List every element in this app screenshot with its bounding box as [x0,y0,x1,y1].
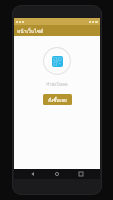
button[interactable]: Back [28,169,38,179]
staticText: หน้าเว็บไซต์ [17,27,44,35]
button[interactable]: Recent apps [76,169,86,179]
button[interactable]: Home [52,169,62,179]
staticText: กำลังโหลด [46,81,68,88]
staticText: สั่งซื้อเลย [48,96,67,104]
other: QR code [52,56,63,67]
button[interactable]: สั่งซื้อเลย [43,94,72,105]
